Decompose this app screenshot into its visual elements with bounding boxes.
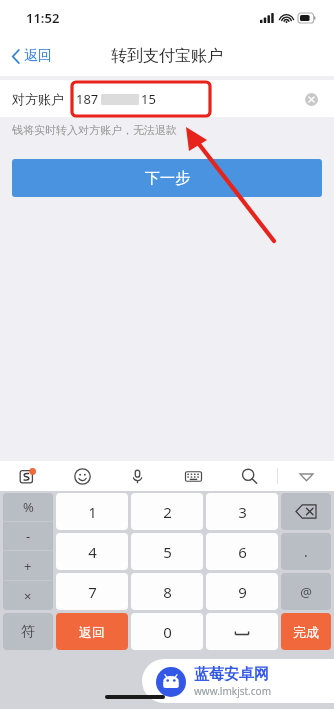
button[interactable]: @ (281, 573, 331, 610)
staticText: 11:52 (26, 9, 60, 27)
staticText: 9 (238, 582, 247, 602)
staticText: 符 (21, 623, 35, 641)
button[interactable]: × (3, 581, 53, 610)
staticText: 完成 (293, 624, 319, 640)
button[interactable]: 返回 (56, 613, 128, 650)
staticText: × (24, 587, 32, 605)
button[interactable]: 3 (206, 493, 278, 530)
staticText: . (304, 542, 308, 561)
button[interactable]: Hide keyboard (278, 461, 334, 491)
button[interactable]: 8 (131, 573, 203, 610)
staticText: 1 (88, 502, 97, 522)
button[interactable]: 7 (56, 573, 128, 610)
staticText: 对方账户 (12, 91, 64, 107)
button[interactable]: . (281, 533, 331, 570)
staticText: www.lmkjst.com (194, 684, 271, 698)
button[interactable]: Voice input (110, 461, 165, 491)
staticText: % (23, 498, 34, 516)
button[interactable]: Search (221, 461, 277, 491)
staticText: 15 (141, 90, 156, 108)
button[interactable]: 符 (3, 613, 53, 650)
staticText: + (24, 557, 32, 575)
button[interactable]: 5 (131, 533, 203, 570)
button[interactable]: Clear (300, 88, 322, 110)
button[interactable]: 0 (131, 613, 203, 650)
button[interactable]: Sogou input (0, 461, 55, 491)
staticText: 7 (88, 582, 97, 602)
button[interactable]: 返回 (0, 41, 64, 71)
staticText: 蓝莓安卓网 (194, 665, 269, 684)
staticText: @ (300, 583, 312, 601)
staticText: - (26, 527, 31, 545)
button[interactable]: Keyboard layout (165, 461, 221, 491)
staticText: 下一步 (145, 169, 190, 188)
button[interactable]: 9 (206, 573, 278, 610)
staticText: 2 (163, 502, 172, 522)
button[interactable]: 1 (56, 493, 128, 530)
button[interactable]: % (3, 493, 53, 521)
staticText: 返回 (24, 47, 52, 65)
staticText: 4 (88, 542, 97, 562)
staticText: 3 (238, 502, 247, 522)
button[interactable]: 下一步 (12, 159, 322, 197)
button[interactable]: 完成 (281, 613, 331, 650)
button[interactable]: 6 (206, 533, 278, 570)
staticText: 187 (76, 90, 99, 108)
button[interactable]: - (3, 522, 53, 550)
button[interactable]: Emoji (55, 461, 110, 491)
staticText: 钱将实时转入对方账户，无法退款 (12, 123, 177, 137)
staticText: 转到支付宝账户 (111, 46, 223, 66)
button[interactable]: 4 (56, 533, 128, 570)
button[interactable]: 2 (131, 493, 203, 530)
staticText: 5 (163, 542, 172, 562)
staticText: 0 (163, 622, 172, 642)
staticText: 6 (238, 542, 247, 562)
button[interactable]: Space (206, 613, 278, 650)
staticText: 返回 (79, 624, 105, 640)
staticText: 8 (163, 582, 172, 602)
button[interactable]: Backspace (281, 493, 331, 530)
button[interactable]: + (3, 551, 53, 580)
